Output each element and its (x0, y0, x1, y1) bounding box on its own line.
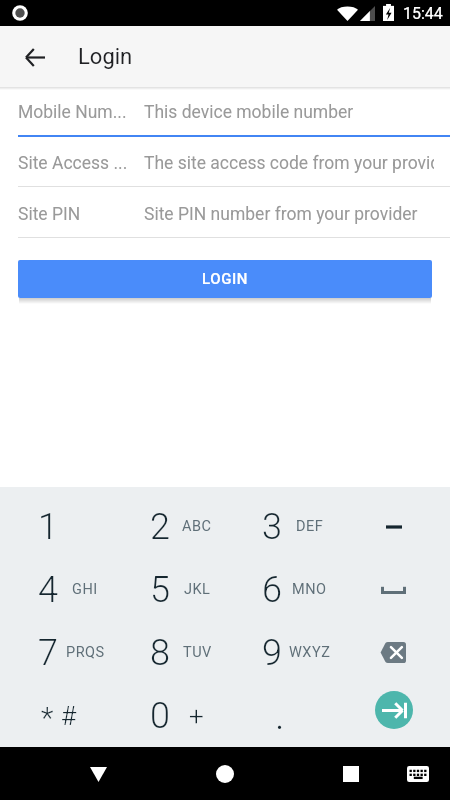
staticText: TUV (183, 644, 212, 661)
staticText: 4 (38, 569, 58, 611)
button[interactable]: Back (12, 34, 58, 80)
staticText: ABC (182, 518, 212, 535)
staticText: This device mobile number (144, 102, 354, 123)
staticText: 6 (262, 569, 282, 611)
staticText: DEF (296, 518, 324, 535)
staticText: 3 (262, 506, 282, 548)
staticText: PRQS (66, 644, 105, 661)
staticText: # (61, 701, 77, 731)
button[interactable]: 3 DEF (224, 495, 337, 558)
button[interactable]: Back (78, 754, 118, 794)
button[interactable]: Enter (337, 684, 450, 747)
button[interactable]: 4 GHI (0, 558, 112, 621)
button[interactable]: Site Access ... (0, 137, 450, 186)
staticText: 8 (150, 632, 170, 674)
staticText: . (275, 692, 285, 739)
staticText: 2 (150, 506, 170, 548)
button[interactable]: Recents (331, 754, 371, 794)
button[interactable]: Space (337, 558, 450, 621)
staticText: JKL (184, 581, 211, 598)
button[interactable]: 1 (0, 495, 112, 558)
button[interactable]: Star Hash (0, 684, 112, 747)
staticText: 1 (38, 506, 58, 548)
staticText: Login (78, 44, 133, 70)
button[interactable]: Period (224, 684, 337, 747)
staticText: 5 (150, 569, 170, 611)
button[interactable]: 5 JKL (112, 558, 224, 621)
button[interactable]: 6 MNO (224, 558, 337, 621)
button[interactable]: Home (205, 754, 245, 794)
staticText: 15:44 (403, 4, 443, 23)
button[interactable]: 7 PRQS (0, 621, 112, 684)
button[interactable]: Keyboard (399, 755, 437, 793)
staticText: MNO (292, 581, 327, 598)
button[interactable]: 9 WXYZ (224, 621, 337, 684)
staticText: WXYZ (289, 644, 331, 661)
staticText: Site Access ... (18, 153, 128, 174)
button[interactable]: 8 TUV (112, 621, 224, 684)
staticText: Mobile Num... (18, 102, 127, 123)
button[interactable]: 0 Plus (112, 684, 224, 747)
button[interactable]: 2 ABC (112, 495, 224, 558)
staticText: Site PIN number from your provider (144, 204, 418, 225)
staticText: LOGIN (202, 270, 249, 288)
button[interactable]: Site PIN (0, 187, 450, 237)
button[interactable]: LOGIN (18, 260, 432, 298)
staticText: 9 (262, 632, 282, 674)
button[interactable]: Mobile Num... (0, 90, 450, 135)
staticText: 0 (150, 695, 170, 737)
staticText: 7 (38, 632, 58, 674)
button[interactable]: Dash (337, 495, 450, 558)
button[interactable]: Backspace (337, 621, 450, 684)
staticText: The site access code from your provider (144, 153, 434, 174)
staticText: GHI (72, 581, 98, 598)
staticText: + (189, 701, 204, 731)
staticText: Site PIN (18, 204, 81, 225)
staticText: * (41, 701, 54, 735)
